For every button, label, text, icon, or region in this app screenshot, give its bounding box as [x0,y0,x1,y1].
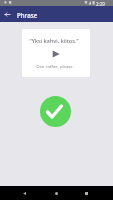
button[interactable]: “Yksi kahvi, kiitos.” [22,29,90,77]
staticText: 2:29 [96,1,105,7]
button[interactable]: Play pronunciation [48,47,63,61]
button[interactable]: Navigate up [0,6,15,22]
staticText: Phrase [17,11,38,19]
staticText: One coffee, please. [22,64,89,70]
button[interactable]: Correct [40,96,71,127]
button[interactable]: Back [14,186,34,200]
staticText: “Yksi kahvi, kiitos.” [22,37,88,45]
button[interactable]: Home [46,186,66,200]
button[interactable]: Recent apps [76,186,96,200]
